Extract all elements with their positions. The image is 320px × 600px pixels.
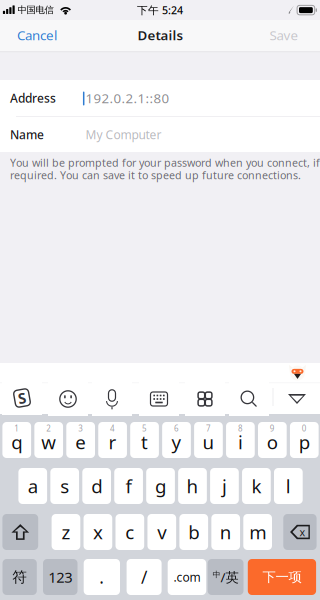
staticText: l xyxy=(286,474,291,498)
button[interactable]: Keyboard layout xyxy=(139,382,179,416)
staticText: 6 xyxy=(174,423,179,434)
button[interactable]: . xyxy=(84,559,120,595)
staticText: /英 xyxy=(220,568,238,586)
staticText: Details xyxy=(138,26,184,44)
staticText: b xyxy=(188,520,199,544)
button[interactable]: Voice input xyxy=(92,382,132,416)
staticText: 1 xyxy=(14,423,19,434)
button[interactable]: 0 xyxy=(290,422,319,458)
button[interactable]: 1 xyxy=(2,422,31,458)
staticText: Name xyxy=(10,126,44,142)
button[interactable]: Emoji xyxy=(48,382,88,416)
staticText: t xyxy=(141,430,148,454)
staticText: d xyxy=(91,474,102,498)
button[interactable]: f xyxy=(114,468,143,504)
staticText: Cancel xyxy=(17,26,57,44)
staticText: 9 xyxy=(270,423,275,434)
staticText: 中 xyxy=(212,570,220,579)
staticText: You will be prompted for your password w… xyxy=(10,155,320,170)
staticText: 0 xyxy=(302,423,307,434)
staticText: 下一项 xyxy=(262,569,301,585)
button[interactable]: a xyxy=(18,468,47,504)
button[interactable]: 3 xyxy=(66,422,95,458)
button[interactable]: Switch Chinese English xyxy=(208,559,243,595)
staticText: 2 xyxy=(46,423,51,434)
staticText: My Computer xyxy=(86,126,162,142)
staticText: 8 xyxy=(238,423,243,434)
button[interactable]: 6 xyxy=(162,422,191,458)
button[interactable]: v xyxy=(147,514,176,550)
staticText: required. You can save it to speed up fu… xyxy=(10,168,301,182)
button[interactable]: Shift xyxy=(2,514,38,550)
button[interactable]: 下一项 xyxy=(248,559,316,595)
button[interactable]: 5 xyxy=(130,422,159,458)
staticText: 7 xyxy=(206,423,211,434)
staticText: Save xyxy=(269,26,298,44)
staticText: 123 xyxy=(48,567,72,587)
staticText: n xyxy=(220,520,232,544)
button[interactable]: / xyxy=(127,559,162,595)
staticText: y xyxy=(171,430,181,454)
button[interactable]: Hide keyboard xyxy=(277,384,317,414)
staticText: 中国电信 xyxy=(17,4,53,16)
button[interactable]: Name xyxy=(0,117,320,152)
staticText: 4 xyxy=(110,423,115,434)
staticText: i xyxy=(238,430,243,454)
button[interactable]: 2 xyxy=(34,422,63,458)
button[interactable]: c xyxy=(115,514,144,550)
button[interactable]: g xyxy=(146,468,175,504)
button[interactable]: h xyxy=(178,468,207,504)
button[interactable]: 4 xyxy=(98,422,127,458)
button[interactable]: More tools xyxy=(185,382,225,416)
staticText: Address xyxy=(10,90,56,106)
button[interactable]: .com xyxy=(168,559,206,595)
staticText: x xyxy=(93,520,103,544)
button[interactable]: d xyxy=(82,468,111,504)
button[interactable]: 符 xyxy=(2,559,37,595)
staticText: o xyxy=(267,430,278,454)
button[interactable]: Address xyxy=(0,80,320,116)
staticText: p xyxy=(299,430,310,454)
staticText: r xyxy=(109,430,117,454)
staticText: 3 xyxy=(78,423,83,434)
button[interactable]: s xyxy=(50,468,79,504)
staticText: z xyxy=(61,520,70,544)
staticText: u xyxy=(202,430,214,454)
staticText: v xyxy=(157,520,166,544)
staticText: s xyxy=(60,474,69,498)
button[interactable]: j xyxy=(210,468,239,504)
button[interactable]: 8 xyxy=(226,422,255,458)
button[interactable]: Search xyxy=(229,382,269,416)
button[interactable]: l xyxy=(274,468,303,504)
staticText: f xyxy=(126,474,132,498)
staticText: 符 xyxy=(12,568,27,586)
staticText: / xyxy=(141,565,147,588)
staticText: k xyxy=(251,474,261,498)
button[interactable]: b xyxy=(179,514,208,550)
button[interactable]: Cancel xyxy=(9,20,65,50)
button[interactable]: 123 xyxy=(43,559,77,595)
staticText: x xyxy=(300,525,306,539)
staticText: h xyxy=(186,474,198,498)
staticText: j xyxy=(222,474,227,498)
staticText: q xyxy=(11,430,22,454)
staticText: . xyxy=(99,565,104,588)
staticText: w xyxy=(41,430,56,454)
staticText: .com xyxy=(173,569,200,585)
staticText: 5 xyxy=(142,423,147,434)
button[interactable]: Save xyxy=(259,20,309,50)
button[interactable]: Delete xyxy=(283,514,317,550)
staticText: a xyxy=(28,474,38,498)
button[interactable]: 9 xyxy=(258,422,287,458)
button[interactable]: 7 xyxy=(194,422,223,458)
button[interactable]: Sogou input method xyxy=(2,381,42,415)
button[interactable]: z xyxy=(52,514,80,550)
staticText: g xyxy=(155,474,166,498)
button[interactable]: m xyxy=(243,514,272,550)
button[interactable]: n xyxy=(211,514,240,550)
staticText: 下午 5:24 xyxy=(137,3,183,17)
staticText: e xyxy=(75,430,86,454)
button[interactable]: x xyxy=(83,514,112,550)
staticText: m xyxy=(249,520,266,544)
button[interactable]: k xyxy=(242,468,271,504)
